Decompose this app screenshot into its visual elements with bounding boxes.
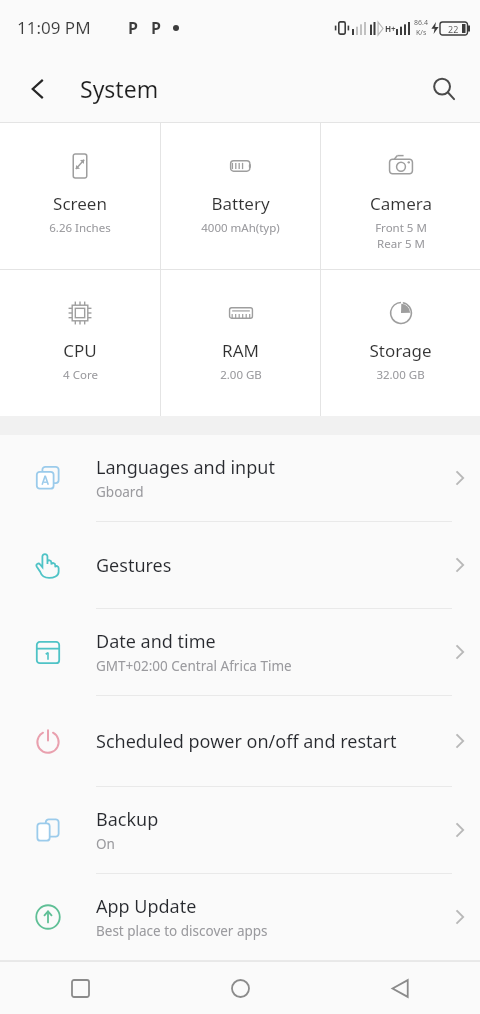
button[interactable]: Backup	[0, 787, 480, 873]
button[interactable]: RAM	[161, 270, 320, 416]
staticText: RAM	[222, 339, 259, 362]
staticText: CPU	[63, 339, 97, 362]
staticText: Gestures	[96, 553, 172, 578]
staticText: 11:09 PM	[17, 16, 91, 39]
staticText: Date and time	[96, 629, 216, 654]
staticText: Front 5 M	[375, 220, 427, 236]
staticText: Scheduled power on/off and restart	[96, 729, 397, 754]
staticText: GMT+02:00 Central Africa Time	[96, 657, 292, 675]
button[interactable]: Back	[12, 63, 64, 115]
button[interactable]: CPU	[0, 270, 160, 416]
staticText: On	[96, 835, 115, 853]
button[interactable]: Camera	[321, 123, 480, 269]
staticText: 86.4	[414, 18, 428, 28]
button[interactable]: Recents	[0, 962, 160, 1014]
staticText: Battery	[211, 192, 270, 215]
button[interactable]: Storage	[321, 270, 480, 416]
button[interactable]: Languages and input	[0, 435, 480, 521]
button[interactable]: Gestures	[0, 522, 480, 608]
button[interactable]: Battery	[161, 123, 320, 269]
staticText: 4 Core	[63, 367, 98, 383]
staticText: Storage	[369, 339, 432, 362]
button[interactable]: Date and time	[0, 609, 480, 695]
staticText: Backup	[96, 807, 159, 832]
staticText: Screen	[53, 192, 107, 215]
staticText: App Update	[96, 894, 197, 919]
staticText: System	[80, 73, 159, 104]
button[interactable]: App Update	[0, 874, 480, 960]
staticText: H+	[385, 23, 396, 34]
staticText: 4000 mAh(typ)	[201, 220, 280, 236]
staticText: Best place to discover apps	[96, 922, 268, 940]
staticText: Rear 5 M	[377, 236, 425, 252]
staticText: 6.26 Inches	[49, 220, 111, 236]
staticText: Languages and input	[96, 455, 275, 480]
button[interactable]: Back	[320, 962, 480, 1014]
button[interactable]: Home	[160, 962, 320, 1014]
staticText: P	[151, 17, 161, 39]
staticText: Gboard	[96, 483, 144, 501]
staticText: 22	[448, 23, 459, 35]
staticText: P	[128, 17, 138, 39]
button[interactable]: Screen	[0, 123, 160, 269]
staticText: K/s	[416, 28, 427, 38]
button[interactable]: Search	[418, 63, 470, 115]
staticText: Camera	[370, 192, 432, 215]
staticText: 2.00 GB	[220, 367, 262, 383]
button[interactable]: Scheduled power on/off and restart	[0, 696, 480, 786]
staticText: 32.00 GB	[376, 367, 425, 383]
